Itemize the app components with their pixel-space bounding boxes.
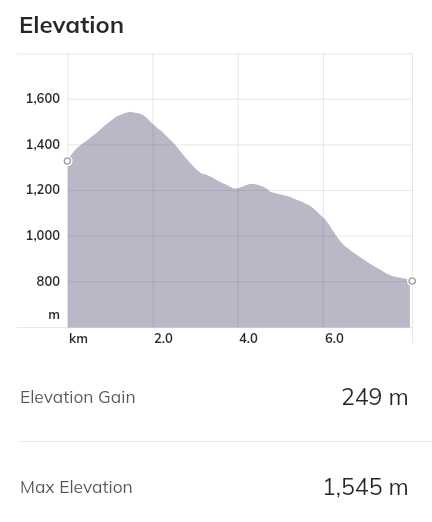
staticText: 4.0 [239, 330, 258, 346]
staticText: 1,400 [0, 136, 60, 152]
staticText: 800 [0, 273, 60, 289]
staticText: 1,200 [0, 181, 60, 197]
staticText: Elevation Gain [20, 386, 136, 408]
staticText: m [0, 306, 60, 322]
staticText: km [69, 330, 88, 346]
staticText: 2.0 [154, 330, 173, 346]
staticText: 6.0 [325, 330, 344, 346]
staticText: 1,545 m [322, 472, 409, 501]
staticText: 249 m [341, 382, 409, 411]
staticText: 1,600 [0, 90, 60, 106]
button[interactable]: Elevation Gain [0, 352, 432, 441]
button[interactable]: Max Elevation [0, 442, 432, 522]
staticText: Max Elevation [20, 476, 133, 498]
staticText: Elevation [19, 9, 125, 39]
staticText: 1,000 [0, 227, 60, 243]
